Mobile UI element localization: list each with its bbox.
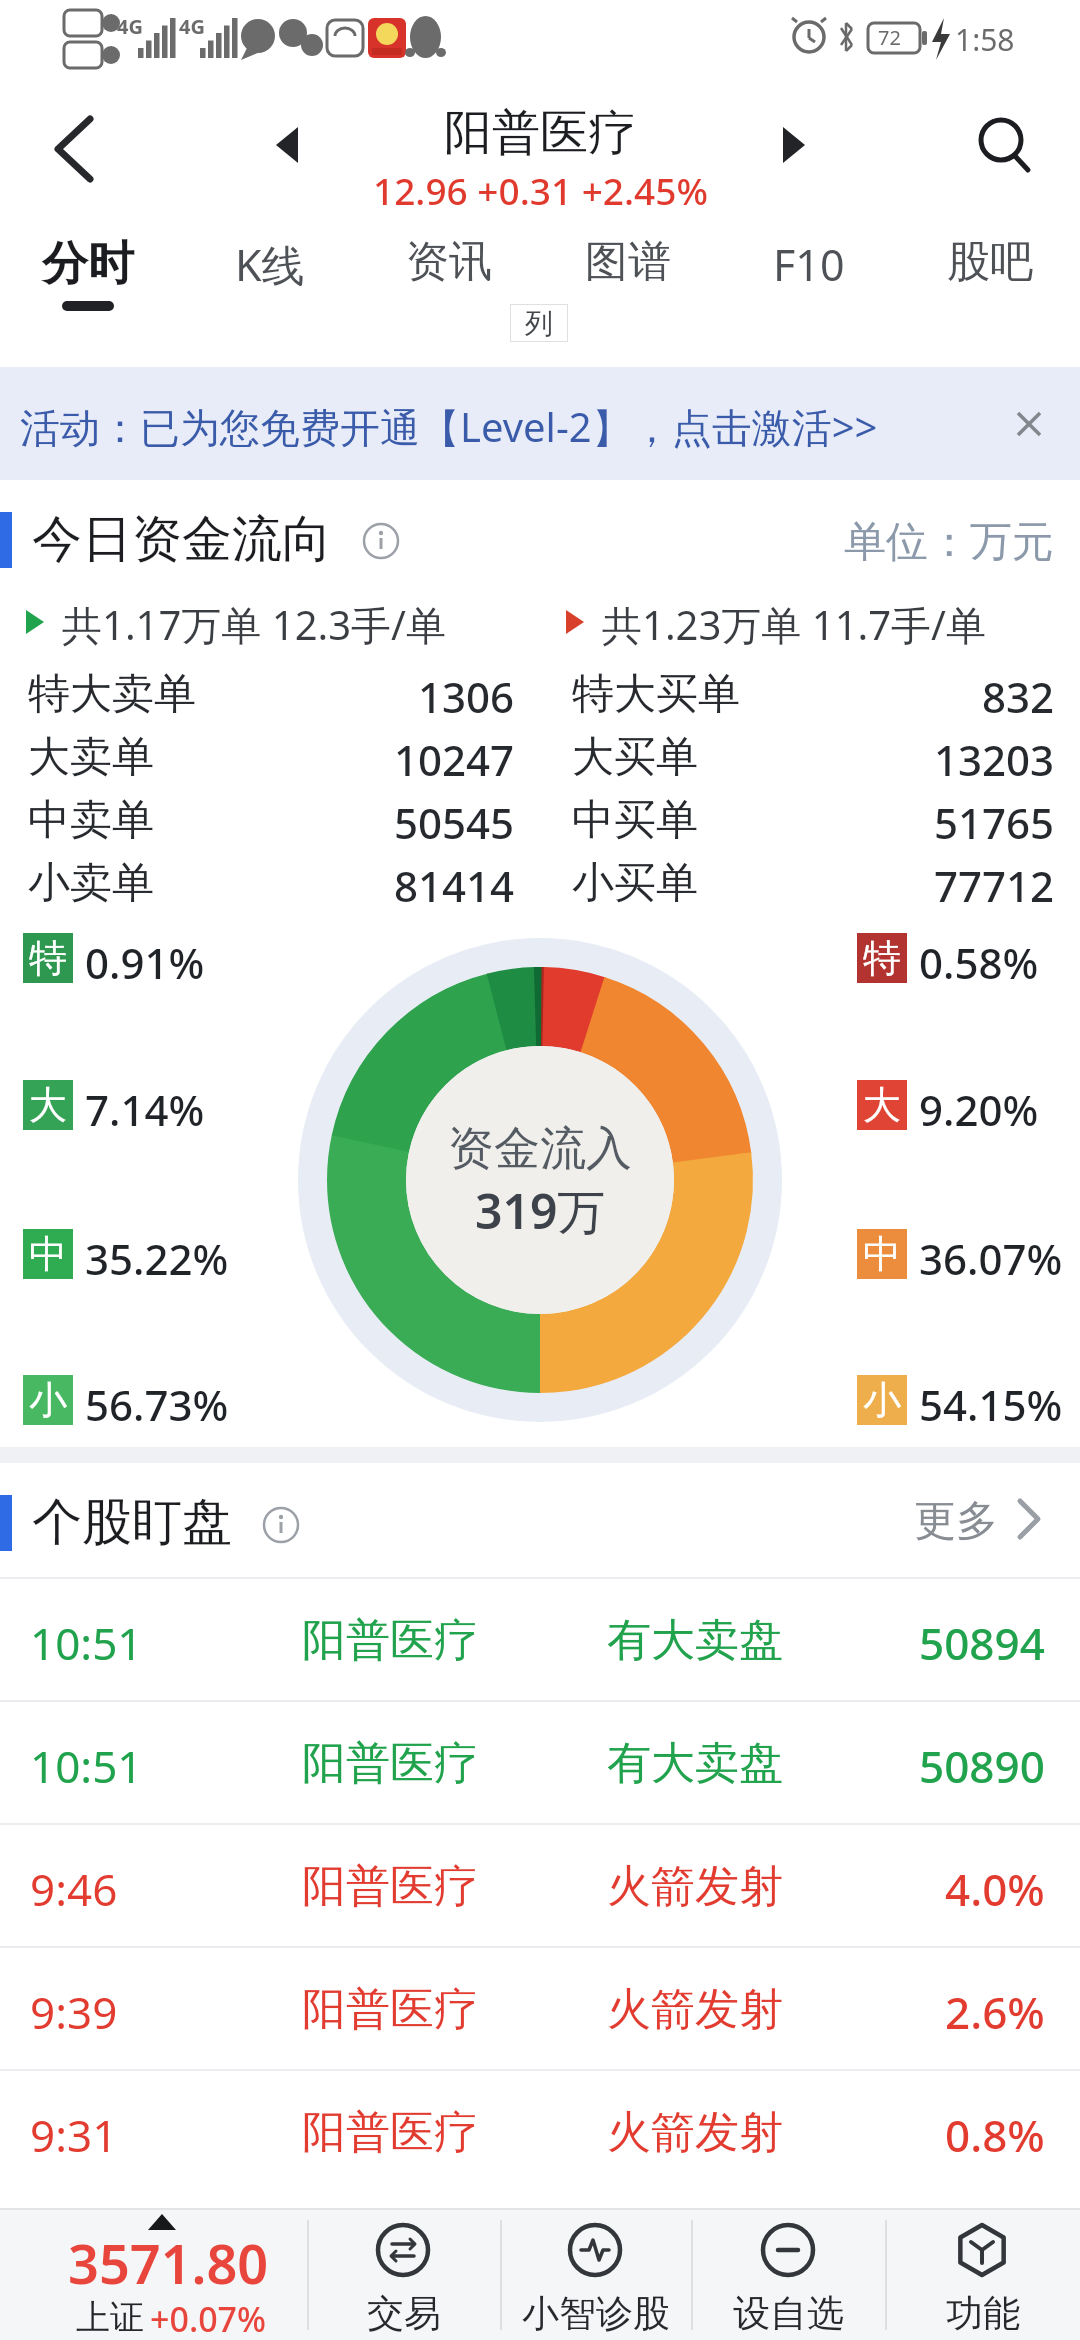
staticText: 54.15%: [919, 1376, 1063, 1433]
staticText: 大买单: [572, 731, 698, 784]
staticText: 股吧: [947, 235, 1033, 289]
staticText: 10247: [394, 731, 515, 788]
staticText: F10: [773, 235, 845, 294]
staticText: 7.14%: [85, 1081, 205, 1138]
staticText: 中卖单: [28, 794, 154, 847]
staticText: 4G: [117, 13, 143, 40]
button[interactable]: 功能: [885, 2208, 1080, 2340]
button[interactable]: 交易: [307, 2208, 500, 2340]
staticText: 12.96 +0.31 +2.45%: [373, 165, 708, 215]
staticText: 特大买单: [572, 668, 740, 721]
button[interactable]: 分时: [8, 225, 168, 325]
staticText: 中: [29, 1230, 67, 1278]
button[interactable]: 小智诊股: [500, 2208, 691, 2340]
staticText: 51765: [934, 794, 1055, 851]
button[interactable]: 10:51: [0, 1577, 1080, 1700]
button[interactable]: 10:51: [0, 1700, 1080, 1823]
staticText: 0.91%: [85, 934, 205, 991]
staticText: 资金流入: [448, 1120, 632, 1178]
staticText: 77712: [934, 857, 1055, 914]
staticText: 小: [863, 1376, 901, 1424]
staticText: 0.58%: [919, 934, 1039, 991]
staticText: 小买单: [572, 857, 698, 910]
button[interactable]: [30, 105, 110, 195]
staticText: 阳普医疗: [444, 103, 636, 163]
staticText: 大: [29, 1081, 67, 1129]
staticText: 中: [863, 1230, 901, 1278]
staticText: 共1.17万单 12.3手/单: [62, 597, 446, 652]
staticText: 阳普医疗: [302, 1736, 478, 1791]
staticText: 阳普医疗: [302, 2105, 478, 2160]
staticText: 50894: [919, 1613, 1045, 1673]
staticText: 50890: [919, 1736, 1045, 1796]
staticText: 上证: [76, 2296, 144, 2339]
button[interactable]: 更多: [900, 1483, 1060, 1563]
staticText: 1:58: [955, 19, 1015, 60]
button[interactable]: 3571.80: [0, 2208, 307, 2340]
staticText: 1306: [418, 668, 515, 725]
staticText: 特大卖单: [28, 668, 196, 721]
staticText: 10:51: [30, 1613, 143, 1673]
staticText: 图谱: [585, 235, 671, 289]
staticText: 资讯: [406, 235, 492, 289]
staticText: 共1.23万单 11.7手/单: [602, 597, 986, 652]
button[interactable]: F10: [729, 225, 889, 325]
button[interactable]: 设自选: [691, 2208, 885, 2340]
button[interactable]: 9:46: [0, 1823, 1080, 1946]
staticText: 319万: [475, 1178, 606, 1244]
staticText: 小智诊股: [522, 2290, 670, 2337]
button[interactable]: 9:31: [0, 2069, 1080, 2192]
staticText: 13203: [934, 731, 1055, 788]
staticText: 阳普医疗: [302, 1613, 478, 1668]
staticText: 中买单: [572, 794, 698, 847]
staticText: 4.0%: [945, 1859, 1045, 1919]
button[interactable]: [1014, 409, 1044, 439]
staticText: 火箭发射: [607, 2105, 783, 2160]
staticText: 4G: [179, 13, 205, 40]
staticText: 设自选: [733, 2290, 844, 2337]
staticText: 特: [863, 934, 901, 982]
button[interactable]: [276, 127, 300, 163]
staticText: 个股盯盘: [32, 1491, 232, 1554]
staticText: 火箭发射: [607, 1859, 783, 1914]
staticText: 单位：万元: [844, 516, 1054, 569]
staticText: 阳普医疗: [302, 1859, 478, 1914]
staticText: 35.22%: [85, 1230, 229, 1287]
staticText: 10:51: [30, 1736, 143, 1796]
staticText: 9.20%: [919, 1081, 1039, 1138]
staticText: 9:46: [30, 1859, 118, 1919]
staticText: 阳普医疗: [302, 1982, 478, 2037]
button[interactable]: K线: [190, 225, 350, 325]
staticText: 特: [29, 934, 67, 982]
staticText: 今日资金流向: [32, 508, 332, 571]
staticText: K线: [235, 235, 305, 294]
staticText: 有大卖盘: [607, 1736, 783, 1791]
staticText: 小: [29, 1376, 67, 1424]
button[interactable]: 资讯: [369, 225, 529, 325]
staticText: 分时: [42, 235, 134, 293]
staticText: 大: [863, 1081, 901, 1129]
staticText: 有大卖盘: [607, 1613, 783, 1668]
button[interactable]: [960, 100, 1050, 190]
button[interactable]: 图谱: [548, 225, 708, 325]
staticText: 36.07%: [919, 1230, 1063, 1287]
button[interactable]: 9:39: [0, 1946, 1080, 2069]
staticText: 列: [525, 306, 553, 341]
staticText: 0.8%: [945, 2105, 1045, 2165]
staticText: 活动：已为您免费开通【Level-2】，点击激活>>: [20, 399, 878, 454]
staticText: 72: [878, 24, 901, 51]
button[interactable]: 活动：已为您免费开通【Level-2】，点击激活>>: [0, 367, 1080, 480]
staticText: 3571.80: [68, 2226, 269, 2300]
button[interactable]: 股吧: [910, 225, 1070, 325]
staticText: 50545: [394, 794, 515, 851]
staticText: 9:31: [30, 2105, 118, 2165]
staticText: 2.6%: [945, 1982, 1045, 2042]
staticText: 交易: [367, 2290, 441, 2337]
staticText: +0.07%: [150, 2296, 267, 2340]
staticText: 功能: [946, 2290, 1020, 2337]
staticText: 小卖单: [28, 857, 154, 910]
button[interactable]: [781, 127, 805, 163]
staticText: 81414: [394, 857, 515, 914]
staticText: 火箭发射: [607, 1982, 783, 2037]
staticText: 更多: [914, 1495, 998, 1548]
